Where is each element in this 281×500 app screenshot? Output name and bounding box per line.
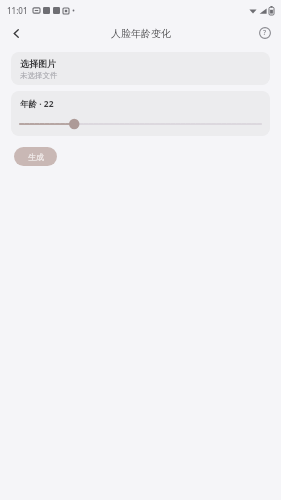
staticText: 年龄 · 22: [20, 98, 54, 110]
button[interactable]: Back: [4, 21, 28, 45]
button[interactable]: 生成: [14, 147, 57, 166]
staticText: 未选择文件: [20, 71, 58, 80]
staticText: 人脸年龄变化: [111, 27, 171, 40]
staticText: 11:01: [7, 5, 28, 16]
button[interactable]: Help: [254, 22, 276, 44]
staticText: 生成: [28, 152, 44, 162]
button[interactable]: [20, 118, 261, 130]
staticText: 选择图片: [20, 58, 56, 69]
button[interactable]: 选择图片: [11, 52, 270, 85]
staticText: ?: [263, 28, 267, 38]
